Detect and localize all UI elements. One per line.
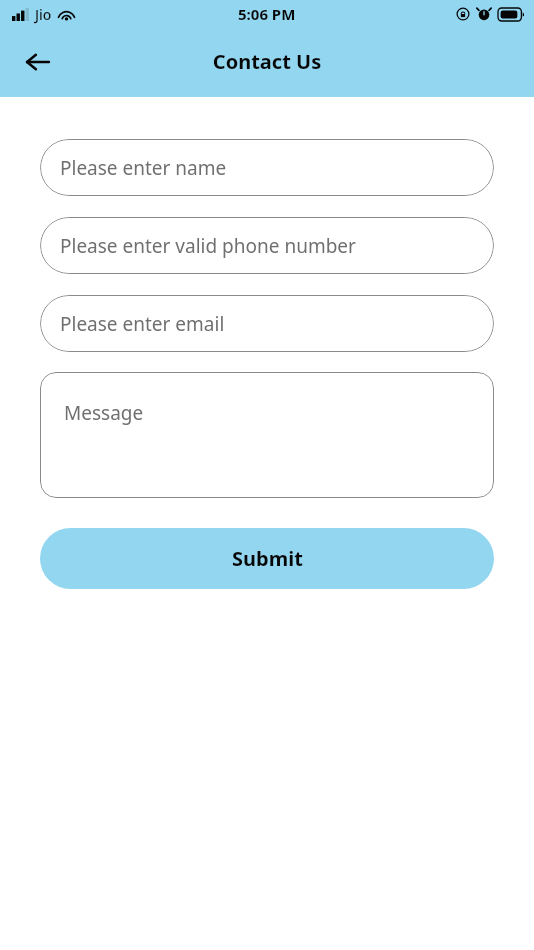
button[interactable]: Please enter name	[40, 139, 494, 196]
staticText: 5:06 PM	[238, 4, 296, 24]
staticText: Jio	[35, 5, 52, 24]
staticText: Message	[64, 400, 144, 426]
staticText: Please enter email	[60, 311, 225, 337]
staticText: Please enter name	[60, 155, 227, 181]
button[interactable]: Please enter email	[40, 295, 494, 352]
button[interactable]: Back	[16, 40, 60, 84]
staticText: Please enter valid phone number	[60, 233, 356, 259]
button[interactable]: Submit	[40, 528, 494, 589]
staticText: Submit	[232, 545, 303, 572]
button[interactable]: Message	[40, 372, 494, 498]
staticText: Contact Us	[0, 48, 534, 75]
button[interactable]: Please enter valid phone number	[40, 217, 494, 274]
